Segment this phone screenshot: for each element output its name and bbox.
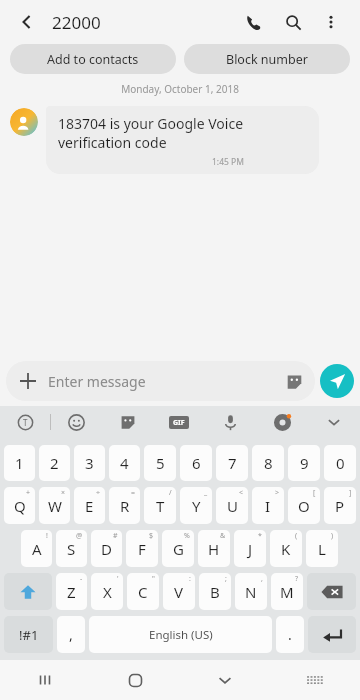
button[interactable]: Translate [0, 406, 50, 438]
button[interactable]: 8 [252, 445, 284, 481]
button[interactable]: M [271, 573, 303, 610]
staticText: T [23, 417, 28, 428]
button[interactable]: Keyboard layout [270, 660, 360, 700]
button[interactable]: Hide keyboard [180, 660, 270, 700]
staticText: < [239, 488, 244, 498]
staticText: , [69, 625, 73, 644]
button[interactable]: Home [90, 660, 180, 700]
button[interactable]: K [270, 530, 302, 567]
staticText: V [174, 582, 184, 602]
button[interactable]: 1 [4, 445, 35, 481]
staticText: !#1 [19, 626, 39, 644]
button[interactable]: English (US) [89, 616, 272, 653]
button[interactable]: Call [238, 7, 268, 37]
button[interactable]: Recents [0, 660, 90, 700]
button[interactable]: . [276, 616, 304, 653]
button[interactable]: F [126, 530, 158, 567]
staticText: N [245, 582, 257, 602]
button[interactable]: Add to contacts [10, 44, 176, 74]
button[interactable]: , [57, 616, 85, 653]
staticText: B [210, 582, 220, 602]
staticText: 6 [192, 453, 201, 473]
staticText: Z [67, 582, 76, 602]
button[interactable]: O [288, 487, 320, 524]
staticText: Q [14, 496, 26, 516]
staticText: K [281, 539, 291, 559]
button[interactable]: 5 [144, 445, 176, 481]
button[interactable]: B [199, 573, 231, 610]
staticText: ( [295, 531, 298, 541]
button[interactable]: I [252, 487, 284, 524]
button[interactable]: R [109, 487, 140, 524]
staticText: Block number [226, 51, 308, 68]
staticText: & [220, 531, 226, 541]
staticText: 4 [120, 453, 129, 473]
button[interactable]: Search [278, 7, 308, 37]
staticText: Add to contacts [47, 51, 139, 68]
button[interactable]: 6 [180, 445, 212, 481]
button[interactable]: J [234, 530, 266, 567]
button[interactable]: Backspace [307, 573, 356, 610]
button[interactable]: 2 [39, 445, 70, 481]
button[interactable]: S [56, 530, 87, 567]
button[interactable]: More options [316, 7, 346, 37]
staticText: / [169, 488, 172, 498]
staticText: English (US) [149, 627, 213, 643]
button[interactable]: P [324, 487, 356, 524]
button[interactable]: Stickers [102, 406, 153, 438]
staticText: G [173, 539, 184, 559]
button[interactable]: Settings [256, 406, 308, 438]
button[interactable]: W [39, 487, 70, 524]
button[interactable]: Y [180, 487, 212, 524]
button[interactable]: T [144, 487, 176, 524]
staticText: R [120, 496, 130, 516]
button[interactable]: V [163, 573, 195, 610]
button[interactable]: Block number [184, 44, 350, 74]
button[interactable]: L [306, 530, 338, 567]
button[interactable]: Enter [308, 616, 356, 653]
staticText: × [61, 488, 66, 498]
staticText: I [265, 496, 271, 516]
button[interactable]: 3 [74, 445, 105, 481]
button[interactable]: N [235, 573, 267, 610]
staticText: D [101, 539, 112, 559]
button[interactable]: H [198, 530, 230, 567]
button[interactable]: Voice input [204, 406, 256, 438]
button[interactable]: !#1 [4, 616, 53, 653]
staticText: Enter message [48, 372, 283, 391]
button[interactable]: Attach [6, 361, 315, 401]
button[interactable]: 4 [109, 445, 140, 481]
button[interactable]: D [91, 530, 122, 567]
button[interactable]: 183704 is your Google Voice verification… [46, 106, 319, 174]
button[interactable]: Back [14, 9, 40, 35]
staticText: ; [225, 574, 227, 584]
staticText: T [156, 496, 165, 516]
button[interactable]: G [162, 530, 194, 567]
staticText: X [103, 582, 112, 602]
staticText: ! [46, 531, 48, 541]
staticText: 0 [336, 453, 345, 473]
staticText: [ [313, 488, 316, 498]
button[interactable]: Collapse [308, 406, 360, 438]
button[interactable]: U [216, 487, 248, 524]
staticText: L [318, 539, 326, 559]
staticText: ) [331, 531, 334, 541]
button[interactable]: 0 [324, 445, 356, 481]
button[interactable]: E [74, 487, 105, 524]
button[interactable]: Emoji [51, 406, 102, 438]
staticText: GIF [173, 418, 185, 428]
button[interactable]: X [91, 573, 123, 610]
staticText: + [26, 488, 31, 498]
button[interactable]: C [127, 573, 159, 610]
button[interactable]: GIF [153, 406, 204, 438]
button[interactable]: Q [4, 487, 35, 524]
button[interactable]: 9 [288, 445, 320, 481]
button[interactable]: Send [320, 364, 354, 398]
button[interactable]: 7 [216, 445, 248, 481]
staticText: W [48, 496, 62, 516]
button[interactable]: Z [56, 573, 87, 610]
button[interactable]: A [21, 530, 52, 567]
staticText: * [258, 531, 262, 541]
other: Attach [16, 369, 40, 393]
button[interactable]: Shift [4, 573, 52, 610]
